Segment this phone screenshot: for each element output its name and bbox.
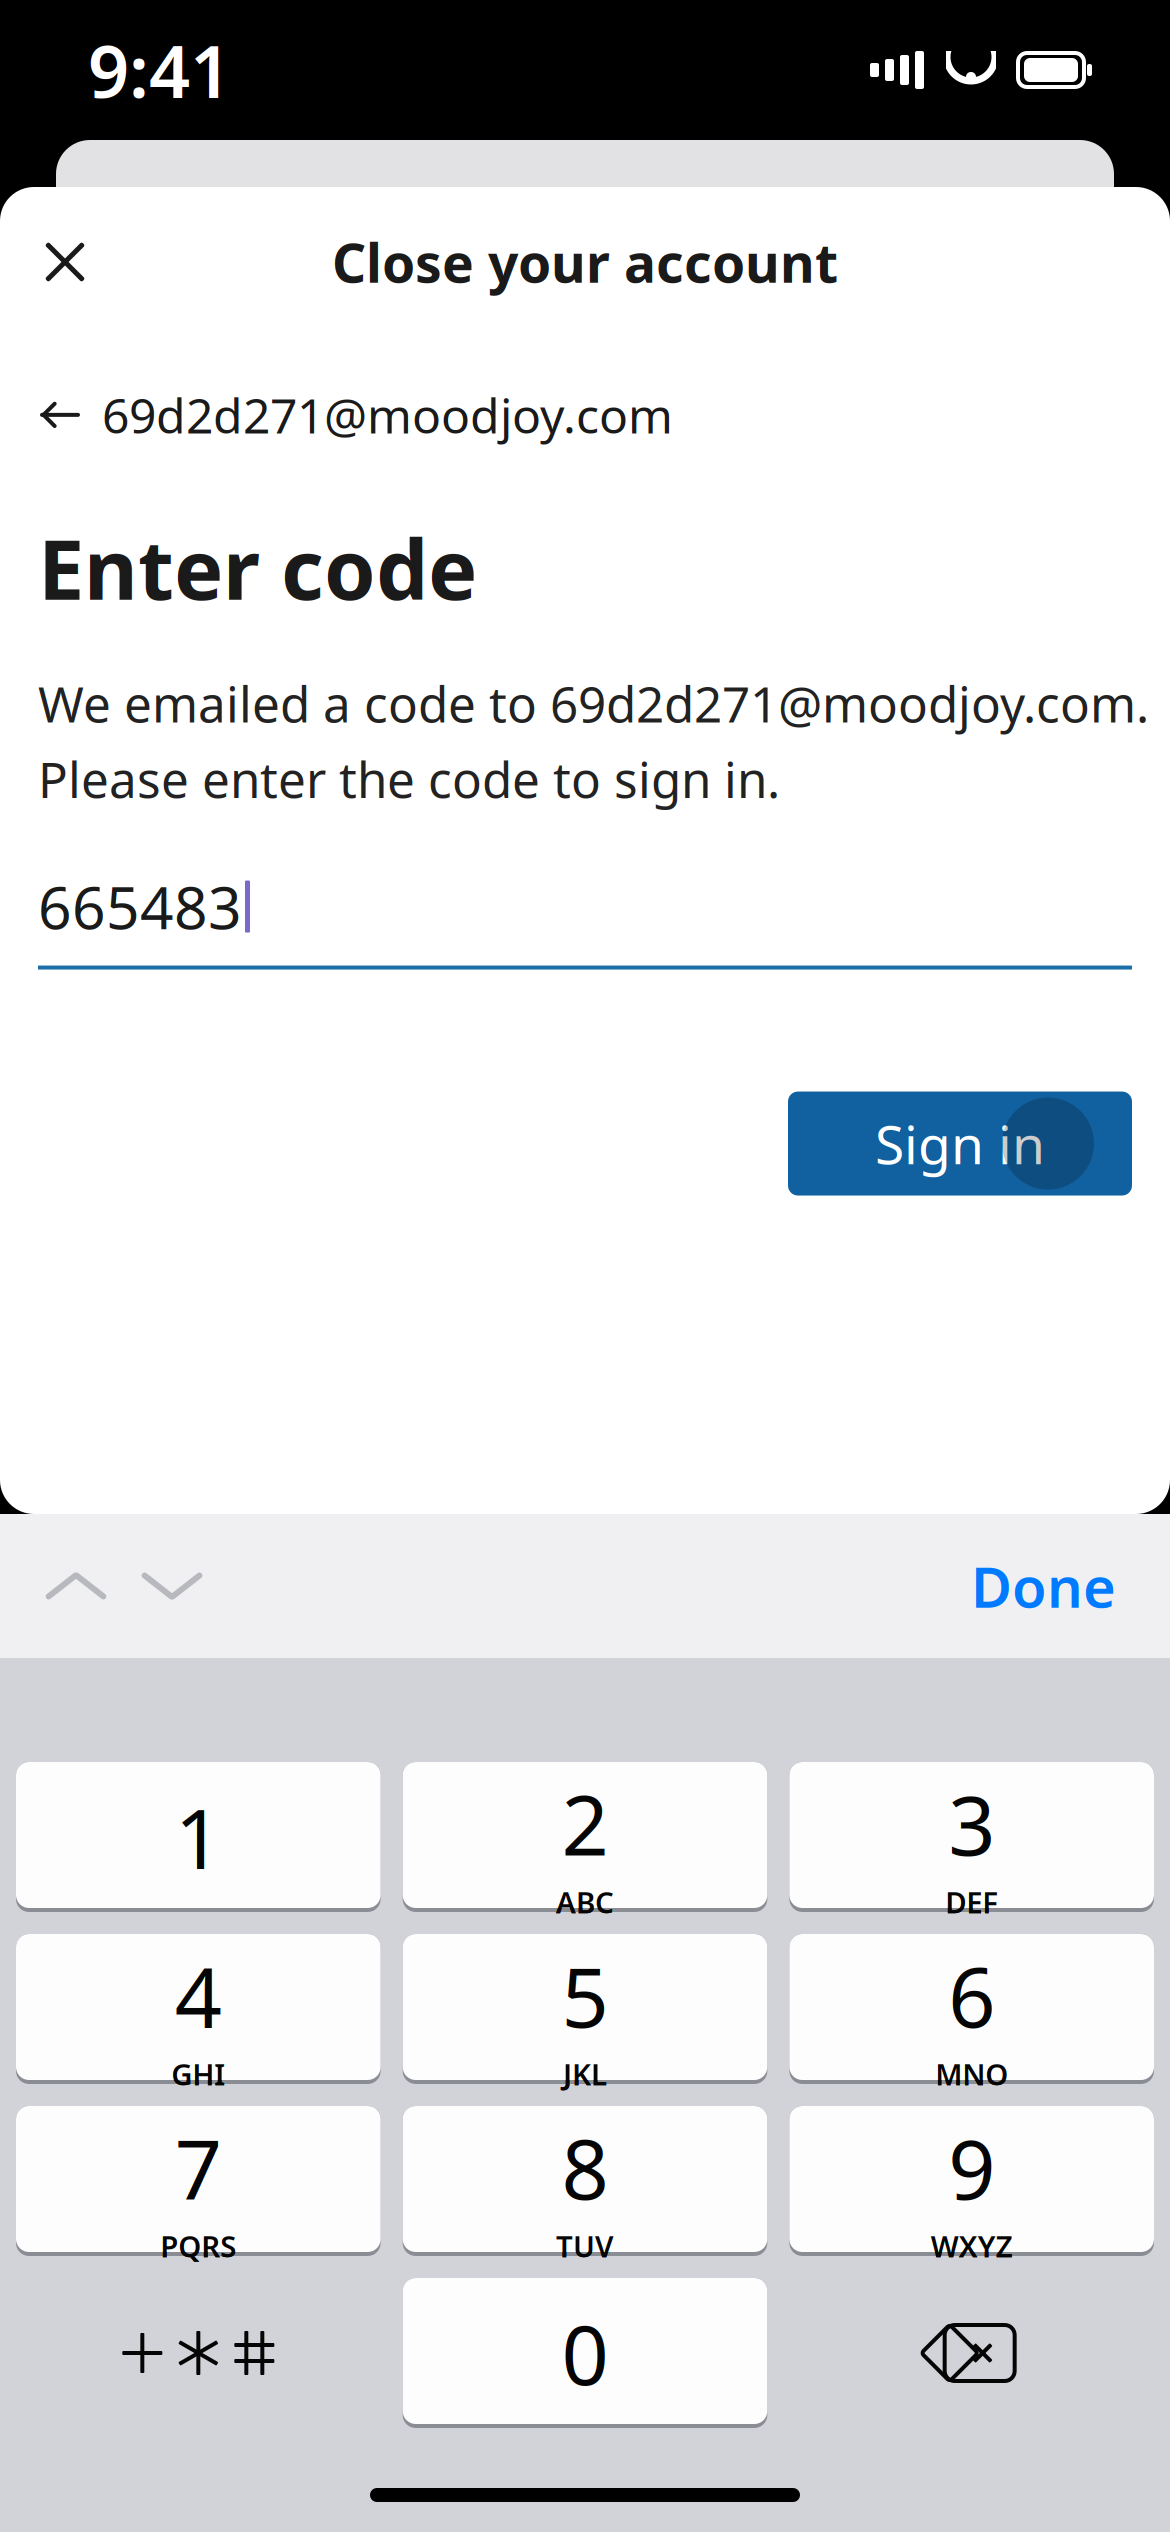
staticText: 69d2d271@moodjoy.com [102,383,673,447]
button[interactable]: 6 [789,1934,1154,2084]
staticText: 6 [948,1941,995,2050]
staticText: ABC [556,1882,614,1921]
button[interactable]: Symbols [16,2278,381,2428]
staticText: MNO [935,2054,1008,2093]
staticText: DEF [945,1882,998,1921]
staticText: WXYZ [931,2226,1013,2265]
staticText: 9:41 [88,22,231,118]
button[interactable]: 2 [403,1762,767,1912]
staticText: 4 [175,1941,222,2050]
button[interactable]: 1 [16,1762,381,1912]
staticText: 3 [948,1769,995,1878]
button[interactable]: 69d2d271@moodjoy.com [38,373,673,457]
staticText: PQRS [160,2226,236,2265]
button[interactable]: Next field [124,1538,220,1634]
staticText: 8 [561,2113,608,2222]
staticText: 2 [561,1769,608,1878]
staticText: 9 [948,2113,995,2222]
staticText: 7 [175,2113,222,2222]
staticText: Please enter the code to sign in. [38,746,780,811]
staticText: 1 [175,1782,222,1892]
staticText: TUV [556,2226,614,2265]
staticText: 5 [561,1941,608,2050]
button[interactable]: Close [18,215,112,309]
staticText: 4 [175,1941,222,2050]
staticText: Enter code [38,513,477,622]
button[interactable]: 5 [403,1934,767,2084]
staticText: 2 [561,1769,608,1878]
staticText: GHI [171,2054,225,2093]
staticText: 7 [175,2113,222,2222]
button[interactable]: 9 [789,2106,1154,2256]
staticText: Close your account [332,227,838,297]
staticText: 8 [561,2113,608,2222]
button[interactable]: Previous field [28,1538,124,1634]
button[interactable]: 7 [16,2106,381,2256]
staticText: 9 [948,2113,995,2222]
staticText: MNO [935,2054,1008,2093]
staticText: 0 [561,2298,608,2408]
staticText: GHI [171,2054,225,2093]
staticText: 6 [948,1941,995,2050]
staticText: JKL [563,2054,607,2093]
button[interactable]: 3 [789,1762,1154,1912]
button[interactable]: 4 [16,1934,381,2084]
staticText: DEF [945,1882,998,1921]
staticText: 1 [175,1782,222,1892]
staticText: We emailed a code to 69d2d271@moodjoy.co… [38,670,1149,736]
staticText: 3 [948,1769,995,1878]
staticText: TUV [556,2226,614,2265]
button[interactable]: 8 [403,2106,767,2256]
staticText: Done [971,1549,1116,1623]
staticText: ABC [556,1882,614,1921]
button[interactable]: Delete [789,2278,1154,2428]
staticText: WXYZ [931,2226,1013,2265]
button[interactable]: Sign in [788,1091,1132,1195]
staticText: 5 [561,1941,608,2050]
staticText: 0 [561,2298,608,2408]
staticText: Sign in [875,1108,1045,1179]
staticText: JKL [563,2054,607,2093]
button[interactable]: Done [947,1531,1140,1641]
button[interactable]: 0 [403,2278,767,2428]
staticText: 665483 [38,868,242,945]
staticText: PQRS [160,2226,236,2265]
